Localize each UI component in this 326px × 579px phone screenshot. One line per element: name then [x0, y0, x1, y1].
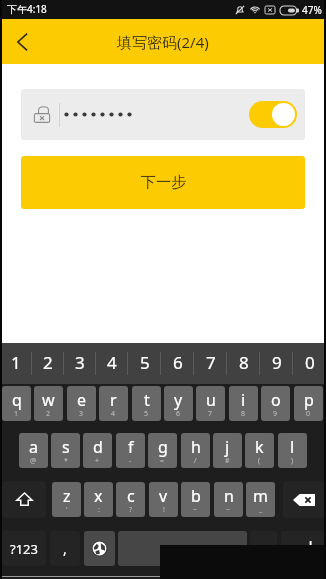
button[interactable]: 1: [0, 343, 32, 384]
staticText: _: [259, 505, 263, 515]
staticText: ~: [193, 505, 198, 515]
staticText: 2: [46, 409, 51, 419]
staticText: 8: [241, 409, 246, 419]
button[interactable]: ?123: [2, 531, 46, 566]
staticText: 3: [75, 351, 85, 374]
staticText: h: [191, 436, 201, 458]
button[interactable]: n: [214, 482, 243, 517]
button[interactable]: Back: [0, 19, 44, 64]
button[interactable]: 2: [32, 343, 64, 384]
button[interactable]: 5: [128, 343, 161, 384]
button[interactable]: q: [2, 386, 31, 421]
staticText: =: [160, 456, 165, 466]
staticText: (: [258, 456, 261, 466]
button[interactable]: Space: [118, 531, 247, 566]
button[interactable]: 8: [227, 343, 260, 384]
button[interactable]: ,: [50, 531, 80, 566]
staticText: d: [93, 436, 103, 458]
staticText: 6: [173, 351, 183, 374]
staticText: /: [194, 456, 197, 466]
button[interactable]: f: [116, 433, 145, 468]
staticText: 0: [305, 351, 315, 374]
button[interactable]: 6: [161, 343, 194, 384]
staticText: z: [63, 485, 71, 507]
button[interactable]: v: [149, 482, 178, 517]
staticText: q: [12, 389, 22, 411]
button[interactable]: 下一步: [21, 156, 305, 209]
button[interactable]: i: [229, 386, 258, 421]
button[interactable]: g: [148, 433, 177, 468]
button[interactable]: u: [196, 386, 225, 421]
staticText: j: [225, 436, 230, 458]
staticText: a: [29, 436, 38, 458]
button[interactable]: h: [181, 433, 210, 468]
button[interactable]: t: [132, 386, 161, 421]
button[interactable]: c: [116, 482, 145, 517]
button[interactable]: Change language: [84, 531, 115, 566]
staticText: u: [206, 389, 216, 411]
button[interactable]: 3: [64, 343, 96, 384]
staticText: .: [262, 539, 266, 558]
button[interactable]: s: [51, 433, 80, 468]
button[interactable]: k: [245, 433, 274, 468]
button[interactable]: a: [19, 433, 48, 468]
button[interactable]: Enter: [281, 531, 324, 566]
staticText: +: [95, 456, 100, 466]
button[interactable]: 7: [194, 343, 227, 384]
button[interactable]: p: [294, 386, 323, 421]
staticText: 下午4:18: [7, 2, 47, 16]
button[interactable]: j: [213, 433, 242, 468]
staticText: :: [98, 505, 100, 515]
staticText: i: [241, 389, 246, 411]
staticText: k: [255, 436, 264, 458]
button[interactable]: e: [67, 386, 96, 421]
button[interactable]: y: [164, 386, 193, 421]
button[interactable]: 0: [293, 343, 326, 384]
button[interactable]: x: [84, 482, 113, 517]
button[interactable]: Show password: [249, 101, 297, 128]
button[interactable]: m: [246, 482, 275, 517]
staticText: 1: [14, 409, 19, 419]
staticText: ~: [226, 505, 231, 515]
staticText: c: [127, 485, 135, 507]
staticText: w: [42, 389, 55, 411]
button[interactable]: r: [99, 386, 128, 421]
staticText: 9: [272, 351, 282, 374]
button[interactable]: .: [250, 531, 277, 566]
staticText: ): [291, 456, 294, 466]
button[interactable]: 4: [96, 343, 128, 384]
button[interactable]: Shift: [2, 481, 46, 518]
staticText: 6: [176, 409, 181, 419]
button[interactable]: d: [83, 433, 112, 468]
staticText: o: [271, 389, 281, 411]
staticText: ?123: [10, 540, 38, 558]
staticText: 下一步: [141, 173, 186, 192]
staticText: ?: [129, 505, 133, 515]
staticText: 47%: [302, 3, 322, 17]
button[interactable]: 9: [260, 343, 293, 384]
staticText: v: [159, 485, 168, 507]
button[interactable]: Backspace: [283, 481, 324, 518]
button[interactable]: w: [34, 386, 63, 421]
staticText: @: [30, 456, 37, 466]
staticText: p: [304, 389, 314, 411]
button[interactable]: b: [181, 482, 210, 517]
staticText: r: [110, 389, 117, 411]
staticText: s: [62, 436, 70, 458]
staticText: g: [158, 436, 168, 458]
staticText: e: [77, 389, 87, 411]
staticText: #: [225, 456, 230, 466]
staticText: 4: [107, 351, 117, 374]
button[interactable]: o: [261, 386, 290, 421]
button[interactable]: l: [278, 433, 307, 468]
staticText: n: [224, 485, 234, 507]
staticText: 9: [273, 409, 278, 419]
button[interactable]: z: [52, 482, 81, 517]
staticText: x: [94, 485, 103, 507]
staticText: 7: [206, 351, 216, 374]
staticText: m: [253, 485, 268, 507]
staticText: 1: [11, 351, 21, 374]
staticText: 填写密码(2/4): [117, 32, 209, 52]
staticText: f: [128, 436, 134, 458]
staticText: 2: [43, 351, 53, 374]
